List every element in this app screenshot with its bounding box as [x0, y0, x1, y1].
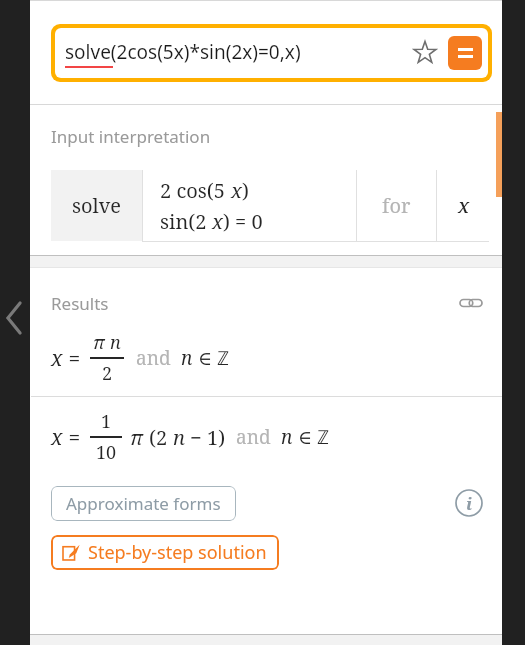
staticText: x	[212, 208, 223, 235]
staticText: x	[51, 344, 63, 373]
button[interactable]: Approximate forms	[51, 486, 236, 521]
staticText: n	[173, 424, 185, 451]
staticText: Results	[51, 292, 454, 315]
staticText: 1	[101, 409, 112, 434]
button[interactable]: solve(2cos(5x)*sin(2x)=0,x)	[55, 28, 488, 78]
staticText: n	[110, 330, 121, 355]
staticText: sin(2	[160, 208, 212, 235]
button[interactable]: More information	[450, 484, 488, 522]
button[interactable]: Add to favorites	[406, 34, 444, 72]
staticText: and	[136, 345, 171, 371]
staticText: 10	[96, 440, 117, 465]
staticText: for	[382, 192, 411, 219]
button[interactable]: Copy link	[454, 286, 488, 320]
staticText: (2	[149, 424, 173, 451]
staticText: n	[281, 424, 293, 450]
staticText: 2 cos(5	[160, 177, 231, 204]
staticText: ∈	[293, 424, 317, 450]
button[interactable]: Step-by-step solution	[51, 535, 279, 570]
staticText: ∈	[193, 345, 217, 371]
staticText: ℤ	[317, 424, 329, 450]
staticText: solve	[72, 192, 122, 219]
staticText: x	[231, 177, 242, 204]
staticText: 2	[102, 361, 113, 386]
staticText: =	[63, 423, 86, 452]
button[interactable]: Evaluate	[448, 36, 482, 70]
staticText: Approximate forms	[66, 492, 221, 515]
staticText: )	[242, 177, 249, 204]
staticText: and	[236, 424, 271, 450]
staticText: ℤ	[217, 345, 229, 371]
staticText: Input interpretation	[51, 125, 211, 148]
staticText: x	[458, 192, 470, 219]
staticText: − 1)	[185, 424, 226, 451]
staticText: ) = 0	[223, 208, 263, 235]
staticText: n	[181, 345, 193, 371]
button[interactable]: Back	[0, 0, 30, 645]
staticText: π	[93, 330, 110, 355]
staticText: π	[130, 424, 149, 451]
staticText: x	[51, 423, 63, 452]
staticText: Step-by-step solution	[88, 540, 267, 565]
staticText: =	[63, 344, 86, 373]
staticText: i	[466, 492, 473, 515]
staticText: solve(2cos(5x)*sin(2x)=0,x)	[65, 39, 301, 65]
